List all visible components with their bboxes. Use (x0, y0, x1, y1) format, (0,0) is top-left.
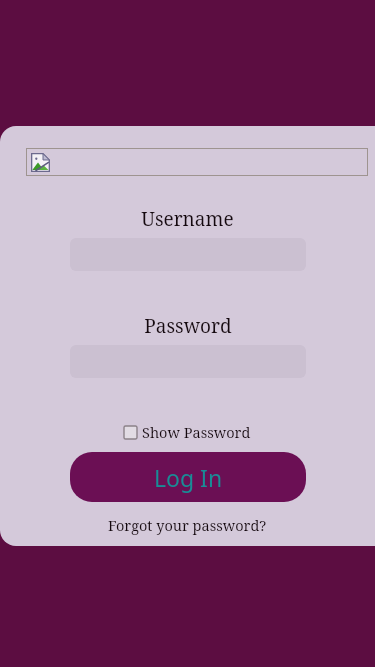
button[interactable]: Logo (26, 148, 368, 176)
staticText: Password (144, 313, 232, 339)
button[interactable]: Show Password (122, 420, 253, 444)
staticText: Show Password (142, 422, 251, 442)
staticText: Log In (154, 462, 223, 493)
staticText: Username (141, 206, 234, 232)
button[interactable]: Log In (70, 452, 306, 502)
button[interactable]: Forgot your password? (104, 514, 271, 536)
staticText: Forgot your password? (108, 515, 267, 535)
